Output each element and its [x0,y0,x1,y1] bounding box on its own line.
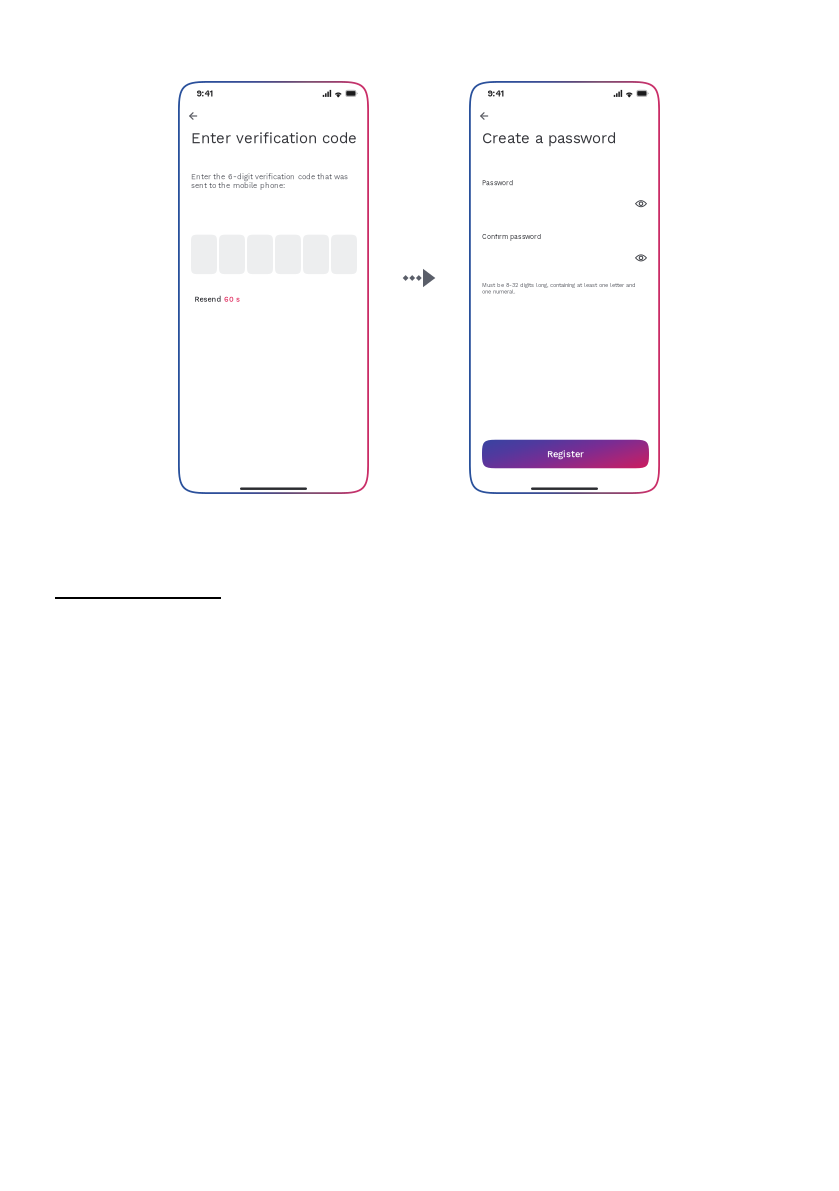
staticText: Enter verification code [191,129,357,147]
staticText: Must be 8-32 digits long, containing at … [482,282,636,295]
staticText: 9:41 [488,88,505,98]
staticText: 9:41 [197,88,214,98]
staticText: Confirm password [482,233,541,240]
staticText: Resend [194,295,221,304]
button[interactable]: Back [477,108,492,123]
staticText: 60 s [224,295,240,304]
staticText: Password [482,179,513,187]
staticText: Register [547,448,584,459]
button[interactable]: Show password [632,249,650,266]
button[interactable]: Back [186,108,201,123]
button[interactable]: Show password [632,195,650,212]
button[interactable]: Register [482,440,649,468]
staticText: Enter the 6-digit verification code that… [191,172,348,190]
staticText: Create a password [482,129,616,147]
